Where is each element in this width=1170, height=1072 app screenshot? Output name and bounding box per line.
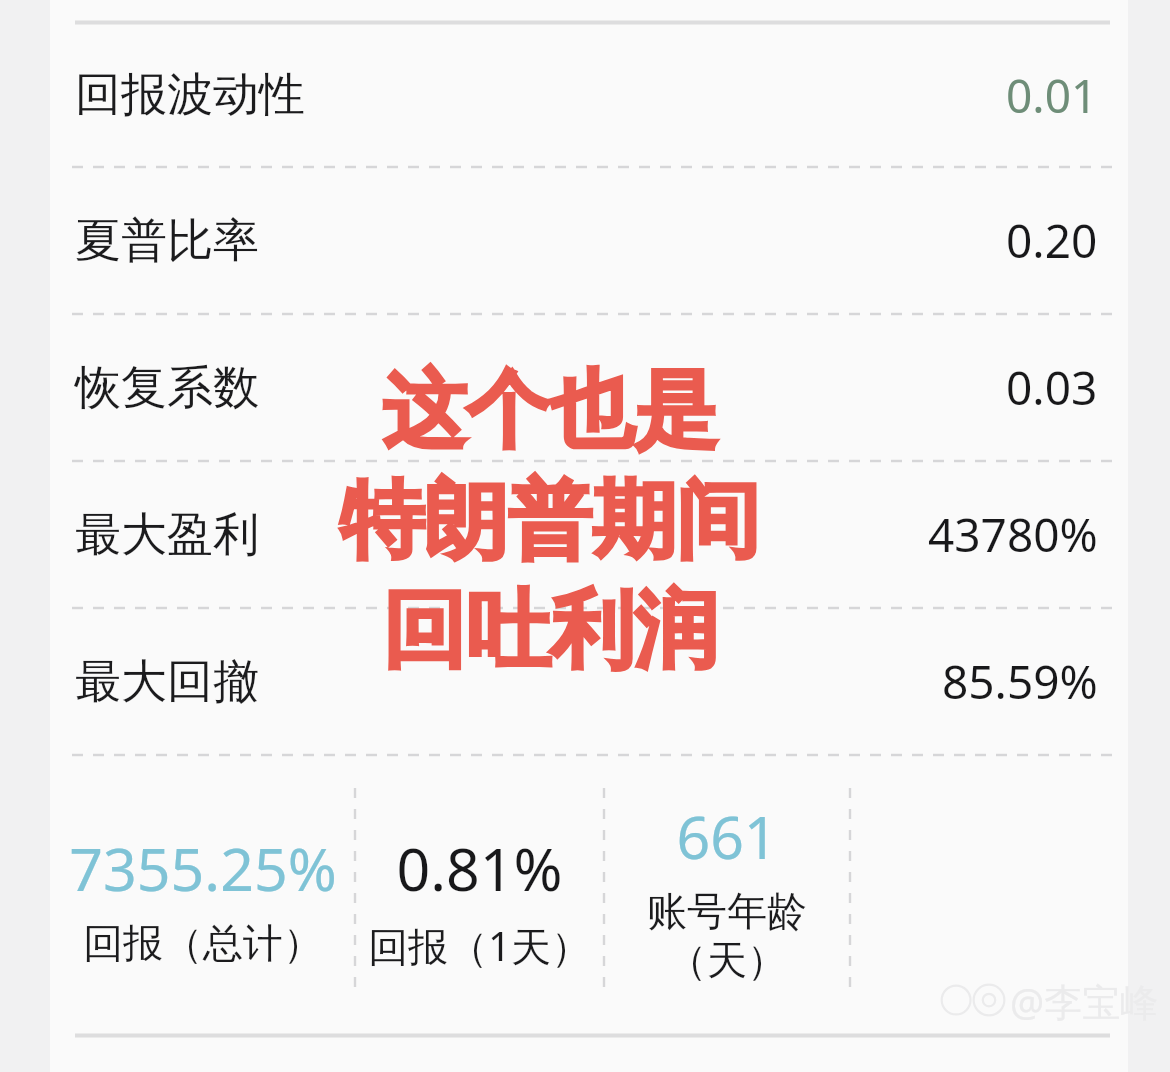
staticText: @李宝峰 xyxy=(1010,975,1159,1027)
button[interactable]: 661 xyxy=(604,796,850,986)
staticText: 回报波动性 xyxy=(75,66,305,124)
button[interactable]: 7355.25% xyxy=(50,828,355,968)
button[interactable]: 恢复系数 xyxy=(50,316,1128,459)
staticText: 0.81% xyxy=(396,828,563,908)
staticText: 这个也是 xyxy=(382,358,718,464)
button[interactable]: 回报波动性 xyxy=(50,25,1128,165)
staticText: 0.20 xyxy=(1006,209,1098,272)
staticText: 0.01 xyxy=(1006,64,1098,127)
staticText: 回报（总计） xyxy=(83,918,323,968)
staticText: 最大回撤 xyxy=(75,653,259,711)
staticText: 7355.25% xyxy=(69,828,337,908)
staticText: 0.03 xyxy=(1006,356,1098,419)
button[interactable]: 0.81% xyxy=(355,828,604,973)
staticText: 最大盈利 xyxy=(75,506,259,564)
staticText: 夏普比率 xyxy=(75,212,259,270)
staticText: 恢复系数 xyxy=(75,359,259,417)
staticText: 43780% xyxy=(928,503,1098,566)
staticText: 回吐利润 xyxy=(382,578,718,684)
button[interactable]: 夏普比率 xyxy=(50,169,1128,312)
staticText: 85.59% xyxy=(942,650,1098,713)
button[interactable]: 最大盈利 xyxy=(50,463,1128,606)
staticText: 661 xyxy=(676,796,778,876)
other: Watermark 李宝峰 xyxy=(940,975,1159,1027)
staticText: 账号年龄 （天） xyxy=(647,886,807,986)
button[interactable]: 最大回撤 xyxy=(50,610,1128,753)
staticText: 特朗普期间 xyxy=(340,468,760,574)
staticText: 回报（1天） xyxy=(368,918,591,973)
